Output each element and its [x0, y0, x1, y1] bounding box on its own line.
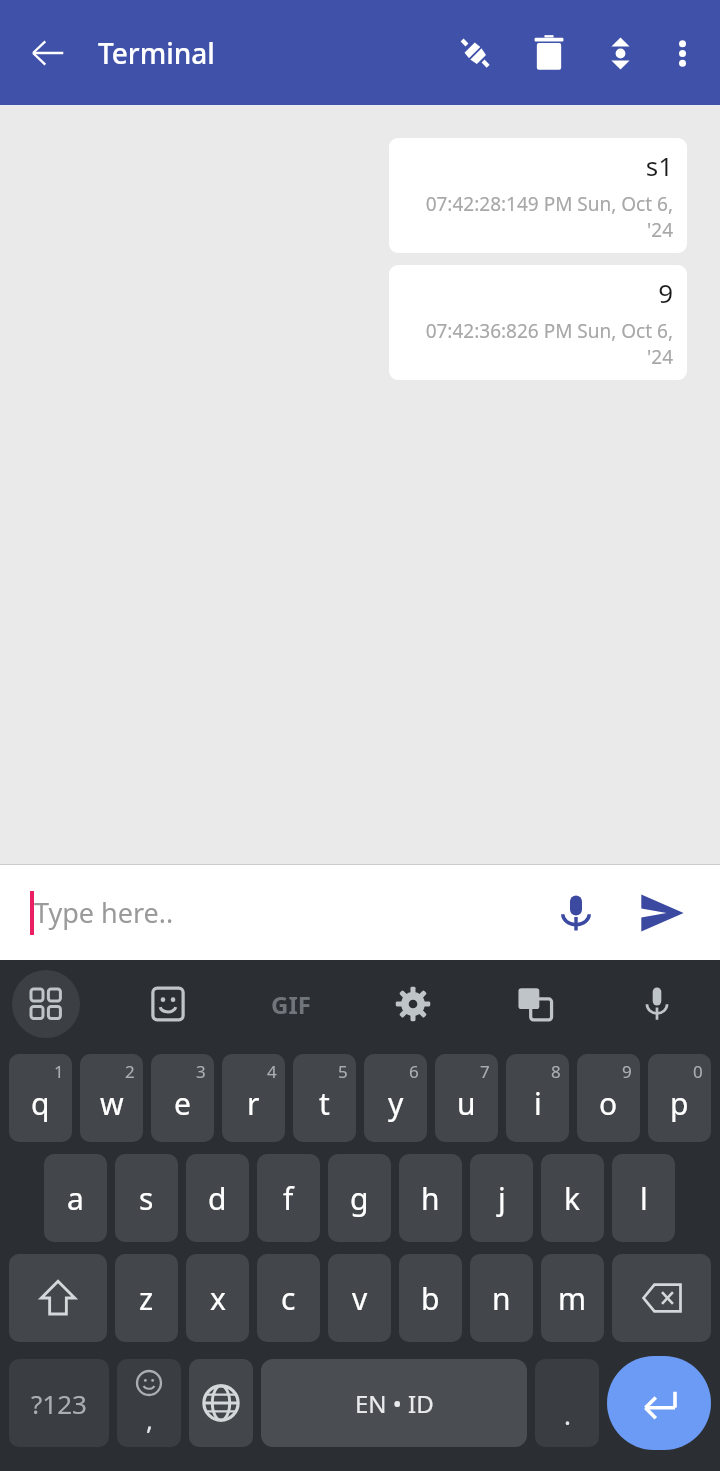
staticText: g [350, 1178, 369, 1219]
button[interactable]: Scroll [592, 25, 648, 81]
staticText: p [670, 1083, 689, 1124]
staticText: u [457, 1083, 476, 1124]
staticText: 4 [267, 1060, 277, 1083]
button[interactable]: More options [654, 25, 710, 81]
staticText: l [640, 1178, 648, 1219]
staticText: h [421, 1178, 440, 1219]
button[interactable]: Type here.. [34, 865, 540, 960]
staticText: 07:42:36:826 PM Sun, Oct 6, '24 [405, 318, 673, 370]
staticText: w [100, 1083, 124, 1124]
staticText: f [283, 1178, 294, 1219]
staticText: k [564, 1178, 581, 1219]
staticText: 9 [622, 1060, 632, 1083]
button[interactable]: . [535, 1359, 599, 1447]
staticText: , [146, 1402, 153, 1437]
button[interactable]: s1 [389, 138, 687, 253]
staticText: r [247, 1083, 260, 1124]
button[interactable]: 2 [80, 1054, 143, 1142]
button[interactable]: Emoji [117, 1359, 181, 1447]
button[interactable]: Voice typing [622, 969, 692, 1039]
button[interactable]: n [470, 1254, 533, 1342]
button[interactable]: Settings [378, 969, 448, 1039]
staticText: 07:42:28:149 PM Sun, Oct 6, '24 [405, 191, 673, 243]
button[interactable]: 7 [435, 1054, 498, 1142]
button[interactable]: l [612, 1154, 675, 1242]
staticText: m [558, 1278, 587, 1319]
staticText: b [421, 1278, 440, 1319]
staticText: i [534, 1083, 542, 1124]
button[interactable]: Translate [500, 969, 570, 1039]
staticText: 6 [409, 1060, 419, 1083]
button[interactable]: Backspace [612, 1254, 711, 1342]
button[interactable]: GIF [256, 969, 326, 1039]
staticText: s1 [645, 148, 673, 183]
staticText: y [388, 1083, 404, 1124]
button[interactable]: Send [626, 877, 698, 949]
staticText: 1 [54, 1060, 64, 1083]
staticText: . [564, 1397, 571, 1432]
button[interactable]: 6 [364, 1054, 427, 1142]
button[interactable]: v [328, 1254, 391, 1342]
button[interactable]: x [186, 1254, 249, 1342]
staticText: n [492, 1278, 511, 1319]
button[interactable]: Change language [189, 1359, 253, 1447]
button[interactable]: z [115, 1254, 178, 1342]
button[interactable]: 1 [9, 1054, 72, 1142]
button[interactable]: f [257, 1154, 320, 1242]
button[interactable]: g [328, 1154, 391, 1242]
staticText: a [67, 1178, 84, 1219]
staticText: v [352, 1278, 368, 1319]
staticText: 0 [693, 1060, 703, 1083]
button[interactable]: 9 [577, 1054, 640, 1142]
button[interactable]: Back [14, 19, 82, 87]
button[interactable]: 8 [506, 1054, 569, 1142]
button[interactable]: m [541, 1254, 604, 1342]
button[interactable]: j [470, 1154, 533, 1242]
staticText: q [31, 1083, 50, 1124]
button[interactable]: Enter [607, 1356, 711, 1450]
button[interactable]: c [257, 1254, 320, 1342]
button[interactable]: b [399, 1254, 462, 1342]
button[interactable]: Connect [444, 22, 506, 84]
staticText: d [208, 1178, 227, 1219]
staticText: x [210, 1278, 226, 1319]
button[interactable]: d [186, 1154, 249, 1242]
staticText: s [139, 1178, 154, 1219]
staticText: Type here.. [34, 894, 174, 931]
staticText: 2 [125, 1060, 135, 1083]
button[interactable]: ?123 [9, 1359, 109, 1447]
button[interactable]: k [541, 1154, 604, 1242]
button[interactable]: 3 [151, 1054, 214, 1142]
staticText: j [498, 1178, 506, 1219]
button[interactable]: Toolbox [12, 970, 80, 1038]
button[interactable]: 5 [293, 1054, 356, 1142]
staticText: o [599, 1083, 618, 1124]
staticText: 5 [338, 1060, 348, 1083]
button[interactable]: 0 [648, 1054, 711, 1142]
staticText: 3 [196, 1060, 206, 1083]
button[interactable]: 4 [222, 1054, 285, 1142]
staticText: EN • ID [355, 1387, 434, 1420]
staticText: 7 [480, 1060, 490, 1083]
staticText: t [319, 1083, 330, 1124]
staticText: GIF [271, 988, 311, 1021]
staticText: z [139, 1278, 154, 1319]
button[interactable]: Voice input [540, 877, 612, 949]
button[interactable]: Shift [9, 1254, 107, 1342]
button[interactable]: Delete [518, 22, 580, 84]
button[interactable]: 9 [389, 265, 687, 380]
button[interactable]: EN • ID [261, 1359, 527, 1447]
staticText: Terminal [98, 34, 215, 72]
staticText: c [281, 1278, 296, 1319]
button[interactable]: a [44, 1154, 107, 1242]
staticText: e [174, 1083, 191, 1124]
button[interactable]: h [399, 1154, 462, 1242]
staticText: 9 [658, 275, 673, 310]
staticText: ?123 [31, 1386, 87, 1421]
button[interactable]: s [115, 1154, 178, 1242]
staticText: 8 [551, 1060, 561, 1083]
button[interactable]: Stickers [133, 969, 203, 1039]
